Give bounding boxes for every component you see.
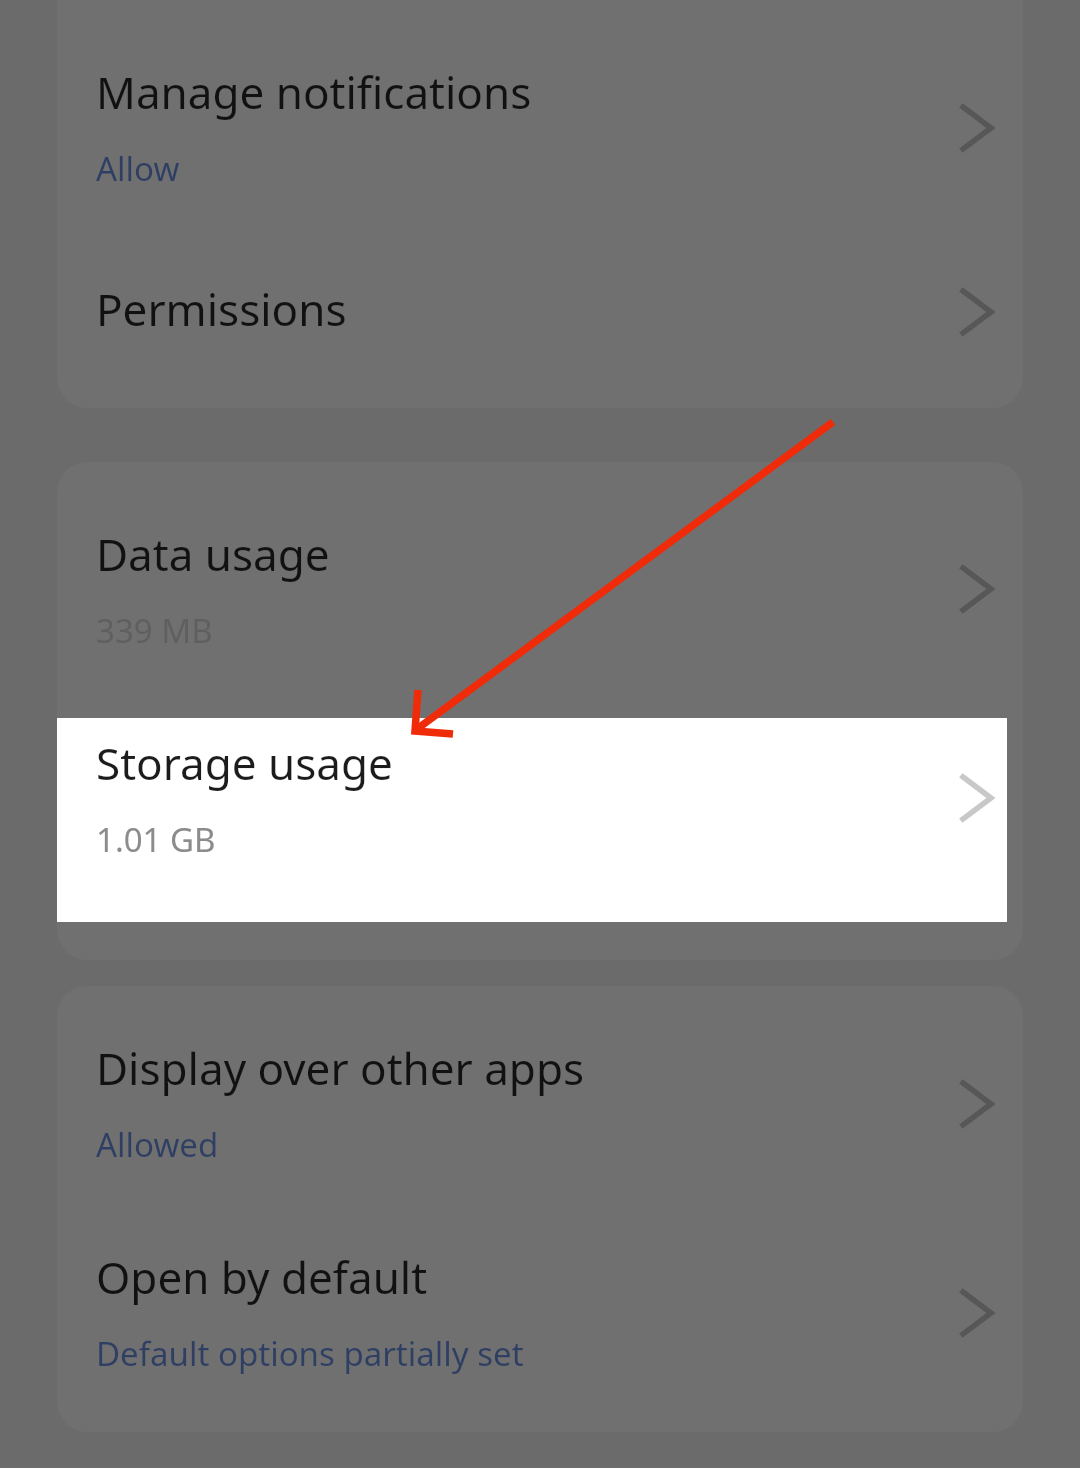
staticText: Manage notifications xyxy=(96,62,532,122)
other: Storage usage xyxy=(951,768,1003,828)
staticText: Storage usage xyxy=(96,733,393,793)
button[interactable] xyxy=(57,246,1023,408)
button[interactable] xyxy=(57,1210,1023,1432)
other: Manage notifications xyxy=(951,98,1003,158)
button[interactable] xyxy=(57,718,1023,922)
button[interactable] xyxy=(57,462,1023,718)
other: Open by default xyxy=(951,1283,1003,1343)
button[interactable] xyxy=(57,0,1023,246)
staticText: Data usage xyxy=(96,524,330,584)
staticText: 1.01 GB xyxy=(96,817,216,862)
other: Data usage xyxy=(951,559,1003,619)
staticText: Allow xyxy=(96,146,180,191)
other: Display over other apps xyxy=(951,1074,1003,1134)
staticText: 339 MB xyxy=(96,608,213,653)
button[interactable] xyxy=(57,986,1023,1210)
other: Permissions xyxy=(951,282,1003,342)
staticText: Display over other apps xyxy=(96,1038,585,1098)
staticText: Permissions xyxy=(96,279,347,339)
staticText: Allowed xyxy=(96,1122,219,1167)
staticText: Default options partially set xyxy=(96,1331,524,1376)
staticText: Open by default xyxy=(96,1247,428,1307)
